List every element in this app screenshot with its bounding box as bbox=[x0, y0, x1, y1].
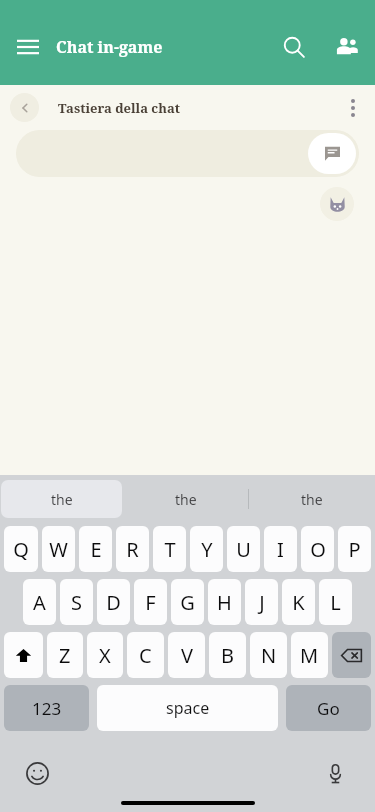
button[interactable]: J bbox=[245, 579, 278, 625]
button[interactable]: E bbox=[79, 526, 112, 572]
staticText: L bbox=[330, 589, 341, 616]
staticText: T bbox=[164, 536, 176, 563]
staticText: the bbox=[51, 490, 73, 509]
staticText: S bbox=[71, 589, 82, 616]
button[interactable]: G bbox=[171, 579, 204, 625]
staticText: E bbox=[90, 536, 102, 563]
staticText: Y bbox=[201, 536, 213, 563]
button[interactable]: X bbox=[87, 632, 123, 678]
staticText: 123 bbox=[32, 697, 62, 720]
staticText: D bbox=[106, 589, 121, 616]
staticText: C bbox=[139, 642, 152, 669]
staticText: H bbox=[217, 589, 232, 616]
button[interactable]: W bbox=[42, 526, 75, 572]
button[interactable]: I bbox=[264, 526, 297, 572]
button[interactable]: D bbox=[97, 579, 130, 625]
staticText: U bbox=[236, 536, 251, 563]
button[interactable]: More options bbox=[331, 86, 375, 130]
staticText: X bbox=[99, 642, 111, 669]
button[interactable]: Shift bbox=[4, 632, 43, 678]
button[interactable]: N bbox=[250, 632, 287, 678]
button[interactable]: Emoji bbox=[17, 753, 57, 793]
staticText: I bbox=[277, 536, 284, 563]
button[interactable]: Menu bbox=[0, 19, 56, 75]
button[interactable]: K bbox=[282, 579, 315, 625]
button[interactable]: Y bbox=[190, 526, 223, 572]
staticText: W bbox=[49, 536, 68, 563]
button[interactable]: A bbox=[23, 579, 56, 625]
staticText: O bbox=[310, 536, 326, 563]
staticText: Chat in-game bbox=[56, 36, 163, 58]
button[interactable]: People bbox=[319, 19, 375, 75]
button[interactable]: C bbox=[127, 632, 164, 678]
staticText: V bbox=[181, 642, 193, 669]
button[interactable]: S bbox=[60, 579, 93, 625]
button[interactable]: V bbox=[168, 632, 205, 678]
button[interactable]: O bbox=[301, 526, 334, 572]
button[interactable]: the bbox=[1, 480, 122, 518]
staticText: P bbox=[348, 536, 361, 563]
button[interactable]: R bbox=[116, 526, 149, 572]
staticText: K bbox=[292, 589, 305, 616]
staticText: A bbox=[33, 589, 46, 616]
button[interactable]: Go bbox=[286, 685, 371, 731]
staticText: the bbox=[301, 490, 323, 509]
button[interactable]: L bbox=[319, 579, 352, 625]
button[interactable]: M bbox=[291, 632, 328, 678]
button[interactable]: space bbox=[97, 685, 278, 731]
button[interactable]: 123 bbox=[4, 685, 89, 731]
button[interactable]: Voice input bbox=[315, 753, 355, 793]
button[interactable]: B bbox=[209, 632, 246, 678]
button[interactable]: Q bbox=[4, 526, 38, 572]
button[interactable]: P bbox=[338, 526, 371, 572]
staticText: B bbox=[221, 642, 234, 669]
button[interactable]: the bbox=[123, 475, 249, 523]
button[interactable]: F bbox=[134, 579, 167, 625]
staticText: space bbox=[166, 697, 210, 719]
button[interactable]: Search bbox=[269, 22, 319, 72]
staticText: Z bbox=[59, 642, 71, 669]
button[interactable]: Backspace bbox=[332, 632, 371, 678]
button[interactable]: U bbox=[227, 526, 260, 572]
button[interactable]: T bbox=[153, 526, 186, 572]
button[interactable]: Chat suggestions bbox=[308, 133, 356, 174]
staticText: J bbox=[259, 589, 265, 616]
button[interactable]: Z bbox=[47, 632, 83, 678]
staticText: Go bbox=[317, 697, 340, 720]
staticText: Q bbox=[13, 536, 29, 563]
staticText: G bbox=[180, 589, 195, 616]
button[interactable]: Back bbox=[10, 93, 39, 122]
staticText: M bbox=[300, 642, 319, 669]
button[interactable]: H bbox=[208, 579, 241, 625]
button[interactable]: Chat suggestions bbox=[16, 130, 359, 177]
button[interactable]: the bbox=[249, 475, 375, 523]
staticText: F bbox=[145, 589, 156, 616]
staticText: the bbox=[175, 490, 197, 509]
staticText: R bbox=[126, 536, 139, 563]
button[interactable]: Avatar bbox=[320, 187, 354, 221]
staticText: N bbox=[261, 642, 277, 669]
staticText: Tastiera della chat bbox=[58, 99, 180, 117]
